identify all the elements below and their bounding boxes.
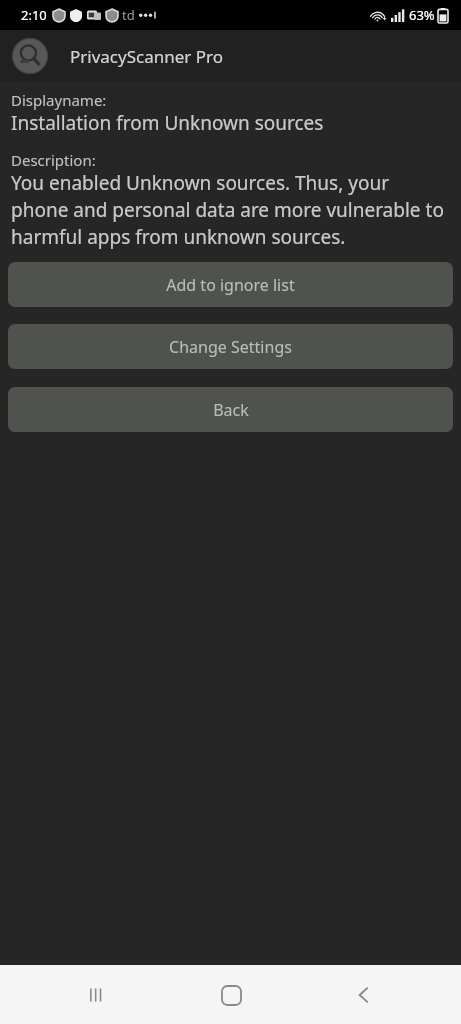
button[interactable]: Home: [195, 971, 267, 1019]
staticText: Displayname:: [11, 90, 107, 110]
staticText: td: [122, 6, 135, 24]
button[interactable]: Add to ignore list: [8, 262, 453, 307]
staticText: Add to ignore list: [166, 274, 295, 296]
staticText: You enabled Unknown sources. Thus, your …: [11, 170, 451, 250]
button[interactable]: Back: [8, 387, 453, 432]
button[interactable]: Back: [328, 971, 400, 1019]
staticText: Change Settings: [169, 336, 292, 358]
staticText: Installation from Unknown sources: [11, 110, 324, 136]
staticText: PrivacyScanner Pro: [70, 45, 224, 68]
button[interactable]: Change Settings: [8, 324, 453, 369]
button[interactable]: Recents: [61, 971, 133, 1019]
staticText: Description:: [11, 150, 96, 170]
staticText: Back: [213, 399, 249, 421]
staticText: 2:10: [21, 6, 47, 24]
staticText: 63%: [409, 6, 435, 24]
